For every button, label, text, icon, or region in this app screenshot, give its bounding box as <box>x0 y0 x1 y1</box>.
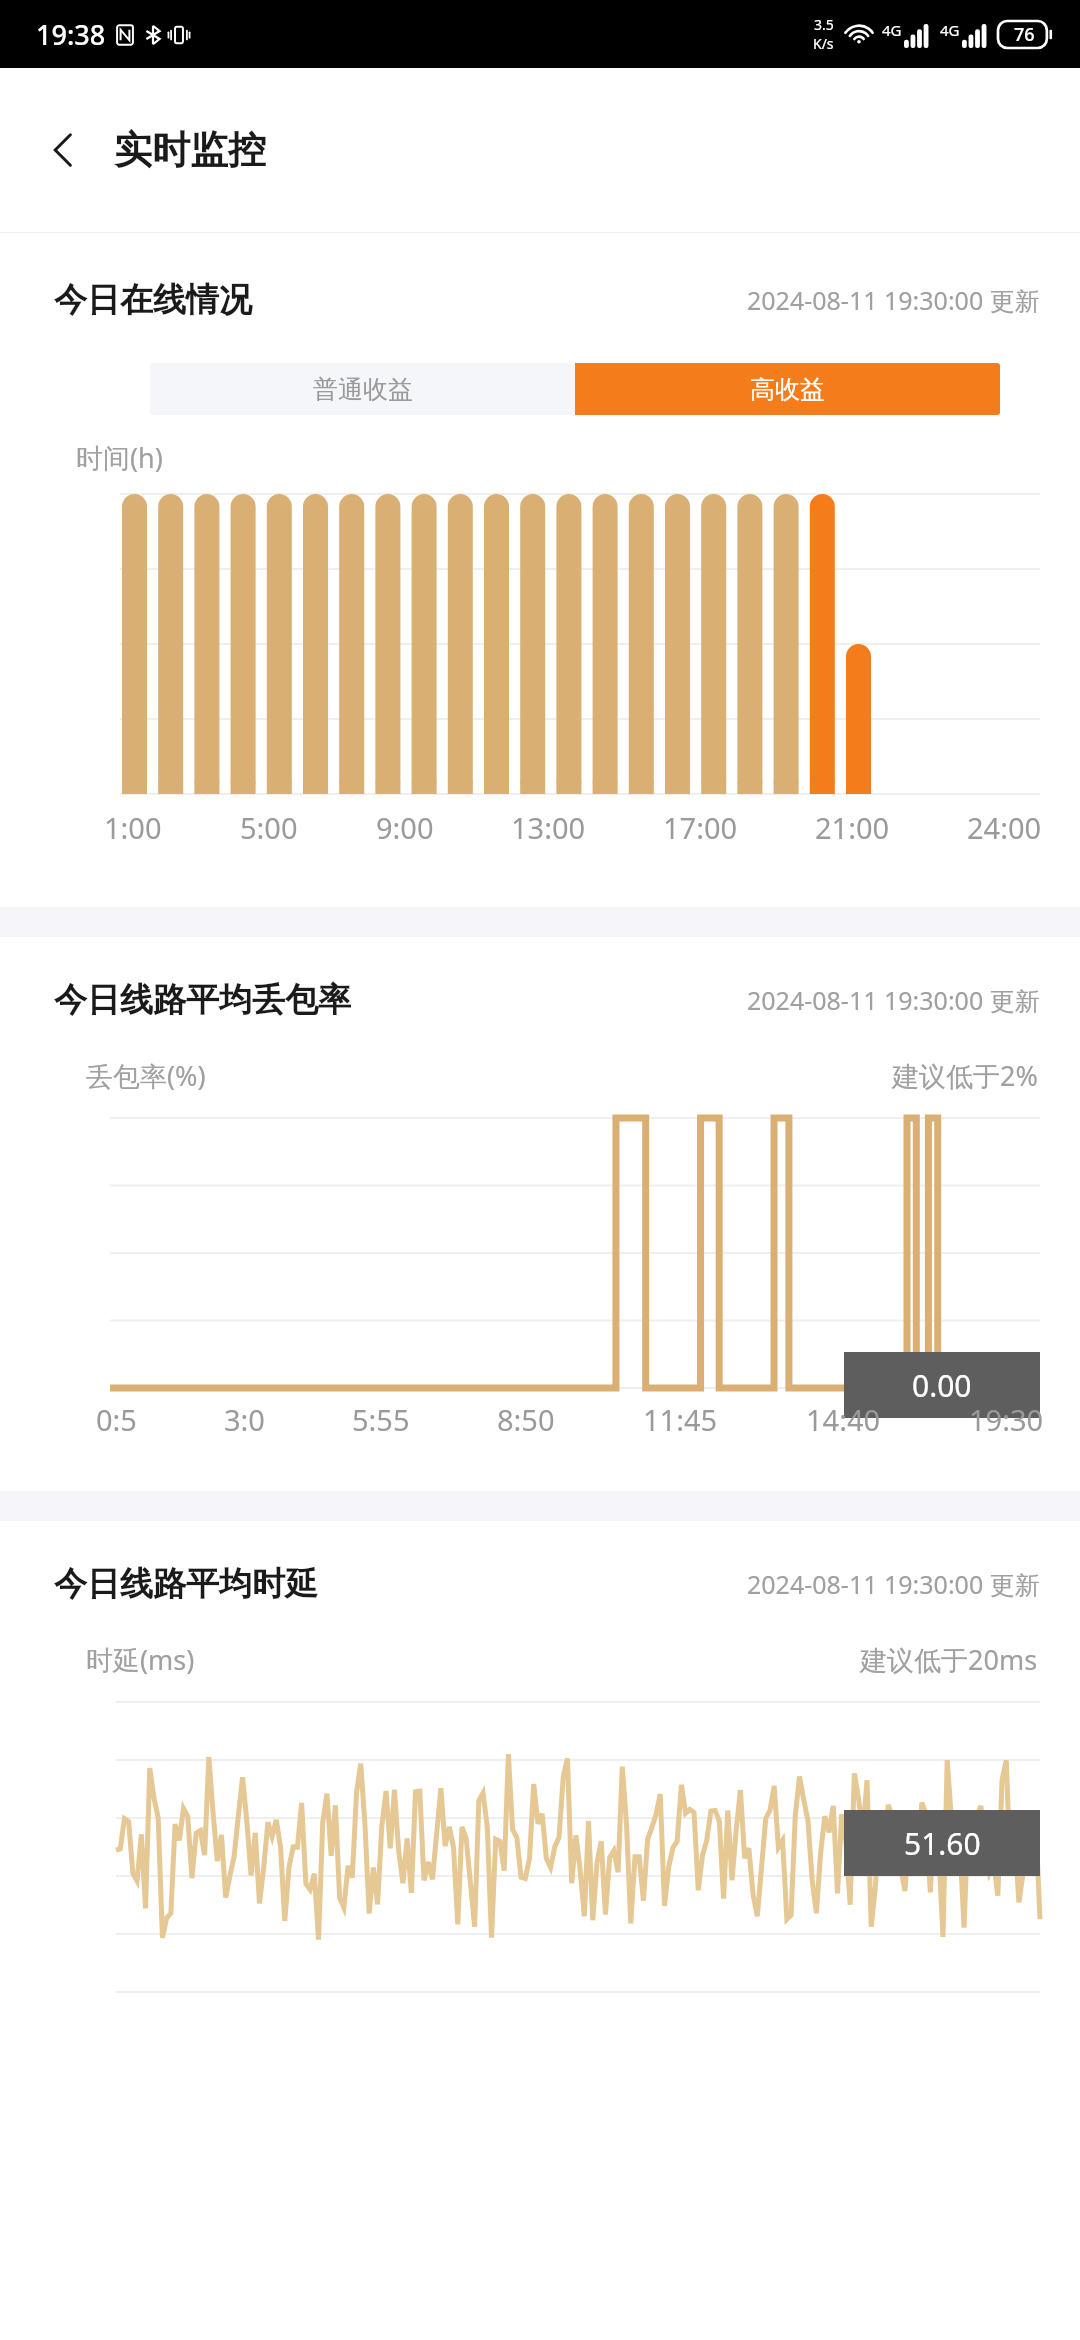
staticText: 时间(h) <box>76 439 163 476</box>
staticText: 24:00 <box>967 808 1042 847</box>
staticText: 51.60 <box>904 1823 981 1864</box>
staticText: 17:00 <box>663 808 738 847</box>
staticText: 76 <box>1014 22 1035 47</box>
staticText: 13:00 <box>511 808 586 847</box>
button[interactable]: Back <box>36 122 92 178</box>
button[interactable]: 普通收益 <box>150 363 575 415</box>
staticText: 3.5 <box>814 15 834 34</box>
staticText: 4G <box>882 20 902 40</box>
staticText: 0:5 <box>96 1400 137 1439</box>
staticText: 今日在线情况 <box>54 279 252 321</box>
staticText: 普通收益 <box>313 374 413 405</box>
staticText: 9:00 <box>376 808 434 847</box>
staticText: 14:40 <box>806 1400 881 1439</box>
button[interactable]: 高收益 <box>575 363 1000 415</box>
staticText: 5:00 <box>240 808 298 847</box>
staticText: 4G <box>940 20 960 40</box>
staticText: 2024-08-11 19:30:00 更新 <box>747 283 1040 317</box>
staticText: 2024-08-11 19:30:00 更新 <box>747 1567 1040 1601</box>
staticText: 11:45 <box>643 1400 718 1439</box>
staticText: 2024-08-11 19:30:00 更新 <box>747 983 1040 1017</box>
staticText: 高收益 <box>750 374 825 405</box>
staticText: K/s <box>813 34 834 53</box>
staticText: 19:38 <box>36 16 106 53</box>
staticText: 今日线路平均时延 <box>54 1563 318 1605</box>
staticText: 1:00 <box>104 808 162 847</box>
staticText: 建议低于20ms <box>860 1641 1038 1678</box>
staticText: 5:55 <box>352 1400 410 1439</box>
staticText: 8:50 <box>497 1400 555 1439</box>
staticText: 21:00 <box>815 808 890 847</box>
staticText: 0.00 <box>912 1365 972 1406</box>
staticText: 今日线路平均丢包率 <box>54 979 351 1021</box>
staticText: 实时监控 <box>114 126 266 174</box>
staticText: 3:0 <box>224 1400 265 1439</box>
staticText: 丢包率(%) <box>86 1057 206 1094</box>
staticText: 19:30 <box>969 1400 1044 1439</box>
staticText: 时延(ms) <box>86 1641 195 1678</box>
staticText: 建议低于2% <box>892 1057 1038 1094</box>
